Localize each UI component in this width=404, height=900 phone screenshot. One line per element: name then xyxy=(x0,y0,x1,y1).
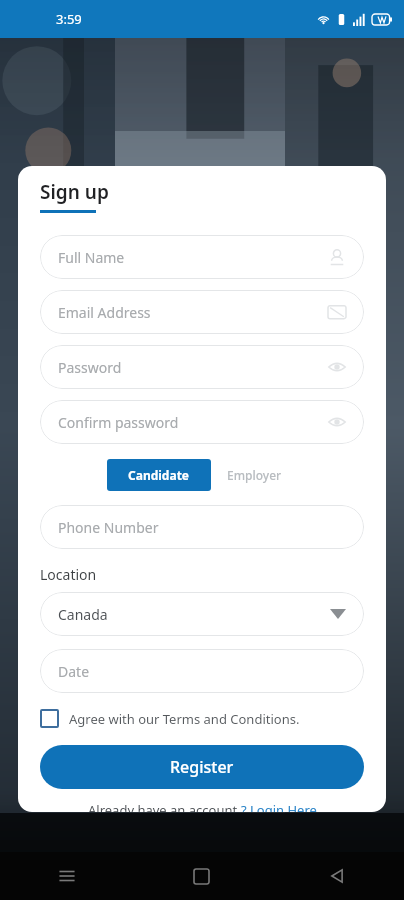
staticText: Candidate xyxy=(128,467,190,483)
button[interactable]: Agree with our Terms and Conditions. xyxy=(40,707,364,730)
other: Show password xyxy=(328,358,346,376)
button[interactable]: Full Name xyxy=(40,235,364,279)
button[interactable]: Email Address xyxy=(40,290,364,334)
other: Name xyxy=(328,248,346,266)
button[interactable]: Candidate xyxy=(107,459,211,491)
other: Show password xyxy=(328,413,346,431)
staticText: 3:59 xyxy=(56,10,82,28)
button[interactable]: Phone Number xyxy=(40,505,364,549)
staticText: Confirm password xyxy=(58,413,328,432)
button[interactable]: Canada xyxy=(40,592,364,636)
staticText: Register xyxy=(170,756,234,778)
staticText: Agree with our Terms and Conditions. xyxy=(69,710,300,728)
other: Email xyxy=(328,303,346,321)
staticText: Employer xyxy=(227,467,282,483)
staticText: ? Login Here xyxy=(241,801,317,812)
button[interactable]: Confirm password xyxy=(40,400,364,444)
staticText: Date xyxy=(58,662,346,681)
staticText: Sign up xyxy=(40,179,109,205)
button[interactable]: Back xyxy=(269,852,404,900)
button[interactable]: Date xyxy=(40,649,364,693)
button[interactable]: Register xyxy=(40,745,364,789)
button[interactable]: Employer xyxy=(211,459,298,491)
staticText: Phone Number xyxy=(58,518,346,537)
button[interactable]: Home xyxy=(134,852,269,900)
staticText: Canada xyxy=(58,605,330,624)
staticText: Location xyxy=(40,565,97,584)
button[interactable]: Password xyxy=(40,345,364,389)
button[interactable]: ? Login Here xyxy=(241,801,317,812)
button[interactable]: Recents xyxy=(0,852,134,900)
staticText: Already have an account xyxy=(88,801,241,812)
staticText: Full Name xyxy=(58,248,328,267)
staticText: Password xyxy=(58,358,328,377)
staticText: Email Address xyxy=(58,303,328,322)
